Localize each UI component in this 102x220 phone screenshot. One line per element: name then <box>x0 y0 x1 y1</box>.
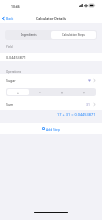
staticText: + <box>17 90 19 95</box>
staticText: Ingredients <box>21 33 37 37</box>
button[interactable]: 0.04453871 <box>0 53 102 61</box>
staticText: 0.04453871 <box>6 55 26 60</box>
staticText: × <box>61 90 63 95</box>
button[interactable]: Ingredients <box>6 31 51 39</box>
staticText: ÷ <box>83 90 85 95</box>
button[interactable]: ÷ <box>73 89 95 95</box>
button[interactable]: Add Step <box>0 123 102 134</box>
button[interactable]: Calculation Steps <box>51 31 96 39</box>
button[interactable]: × <box>51 89 73 95</box>
button[interactable]: Back <box>0 13 18 23</box>
staticText: − <box>39 90 41 95</box>
staticText: Add Step <box>46 127 60 131</box>
button[interactable]: + <box>7 89 29 95</box>
staticText: Operations <box>6 70 22 74</box>
staticText: 17 + 31 = 0.04453871 <box>57 112 96 117</box>
staticText: Sum <box>6 102 14 107</box>
staticText: Yield <box>6 45 13 49</box>
staticText: Back <box>6 16 14 20</box>
button[interactable]: − <box>29 89 51 95</box>
button[interactable]: Sugar <box>0 74 102 86</box>
staticText: 31 <box>86 102 91 107</box>
staticText: Sugar <box>6 78 16 83</box>
staticText: 10:46 <box>11 4 20 9</box>
staticText: Calculator Details <box>36 16 67 21</box>
staticText: Calculation Steps <box>62 33 85 37</box>
button[interactable]: Sum <box>0 98 102 110</box>
